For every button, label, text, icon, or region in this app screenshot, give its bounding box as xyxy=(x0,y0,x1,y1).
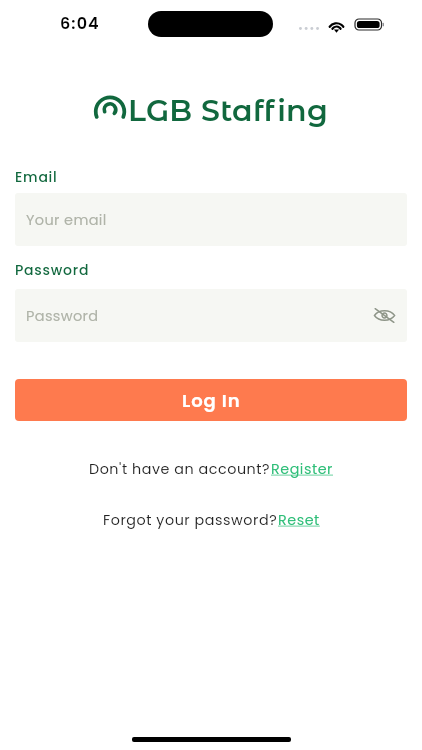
staticText: Forgot your password? xyxy=(103,510,278,530)
staticText: Password xyxy=(26,306,99,326)
staticText: Register xyxy=(271,459,334,479)
button[interactable]: Register xyxy=(271,459,334,479)
staticText: 6:04 xyxy=(60,12,100,34)
button[interactable]: Log In xyxy=(15,379,407,421)
staticText: Reset xyxy=(278,510,320,530)
staticText: Email xyxy=(15,167,58,187)
button[interactable]: Show password xyxy=(367,298,401,332)
button[interactable]: Your email xyxy=(15,193,407,246)
button[interactable]: Reset xyxy=(278,510,320,530)
staticText: Don't have an account? xyxy=(89,459,271,479)
staticText: Password xyxy=(15,260,90,280)
button[interactable]: Password xyxy=(15,289,407,342)
staticText: Your email xyxy=(26,210,107,230)
staticText: LGB Staffing xyxy=(128,92,329,129)
staticText: Log In xyxy=(182,388,241,413)
